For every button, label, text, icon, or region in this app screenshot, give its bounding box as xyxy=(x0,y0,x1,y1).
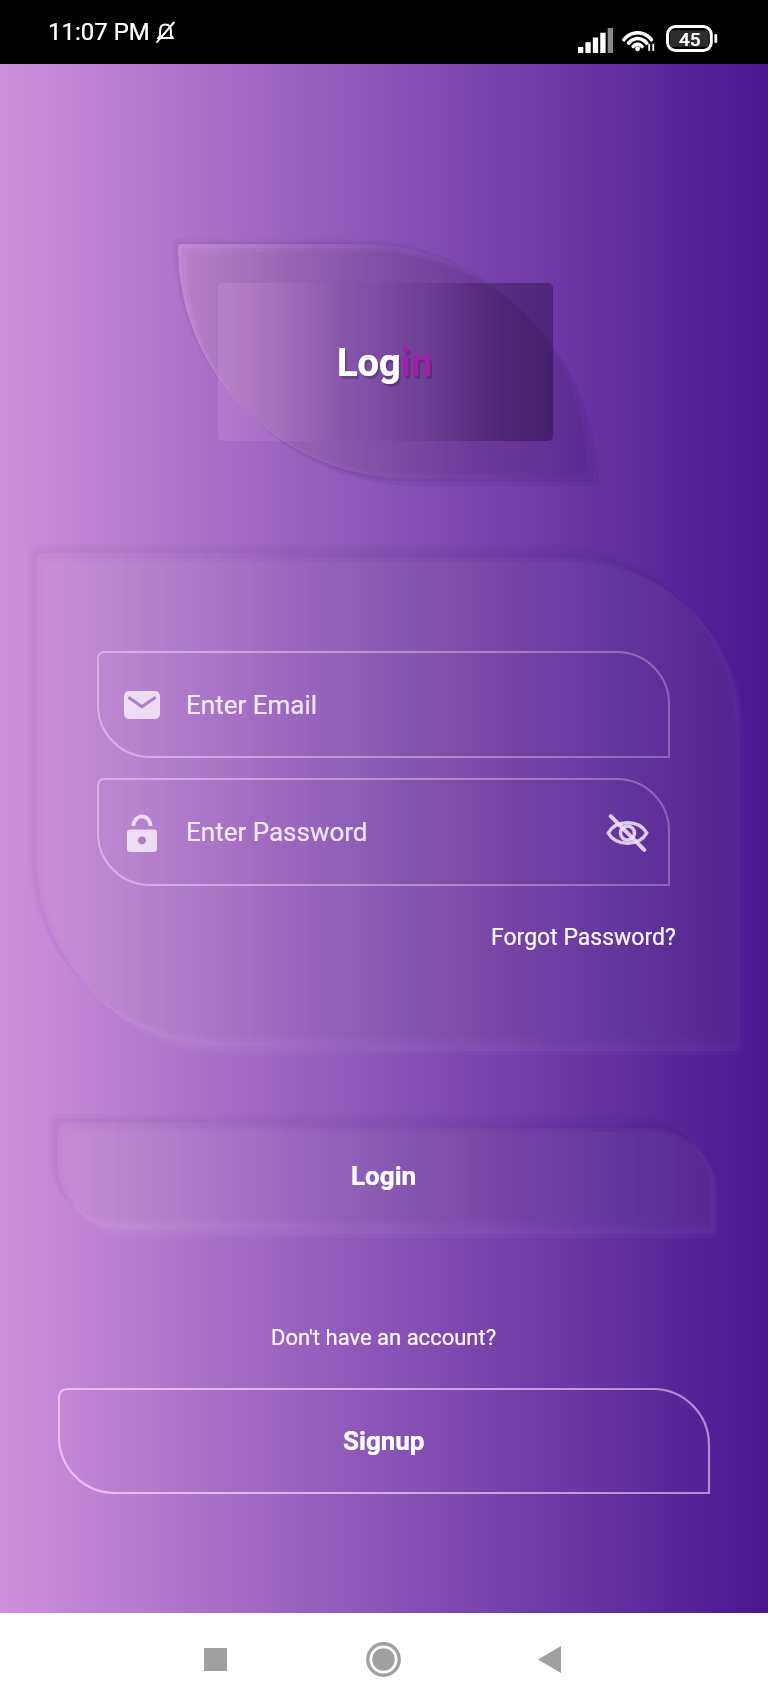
button[interactable]: Enter Email xyxy=(124,652,669,757)
button[interactable]: Signup xyxy=(59,1389,709,1493)
staticText: 45 xyxy=(679,28,701,50)
staticText: Login xyxy=(339,344,435,389)
staticText: Login xyxy=(351,1161,417,1191)
button[interactable]: Recent apps xyxy=(180,1624,251,1695)
staticText: 11:07 PM xyxy=(48,18,150,46)
staticText: Don't have an account? xyxy=(271,1325,497,1351)
staticText: Enter Email xyxy=(186,690,318,720)
button[interactable]: Home xyxy=(348,1624,419,1695)
staticText: Enter Password xyxy=(186,817,368,847)
button[interactable]: Back xyxy=(514,1624,585,1695)
button[interactable]: Login xyxy=(58,1123,710,1229)
button[interactable]: Forgot Password? xyxy=(491,924,676,951)
staticText: Signup xyxy=(343,1426,425,1456)
staticText: Login xyxy=(337,341,433,386)
button[interactable]: Show password xyxy=(597,803,657,863)
button[interactable]: Enter Password xyxy=(127,779,669,885)
